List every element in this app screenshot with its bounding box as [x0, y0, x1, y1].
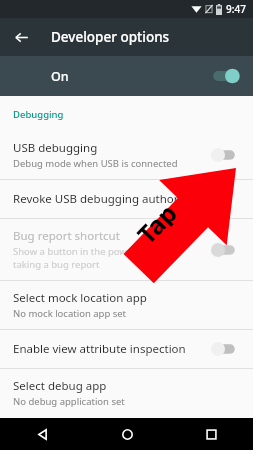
button[interactable]: Back: [0, 418, 85, 450]
staticText: Select debug app: [13, 378, 107, 394]
staticText: Tap: [129, 196, 181, 248]
staticText: On: [51, 68, 209, 85]
button[interactable]: USB debugging: [0, 131, 253, 179]
button[interactable]: Select debug app: [0, 369, 253, 417]
button[interactable]: On: [0, 56, 253, 96]
staticText: Bug report shortcut: [13, 228, 120, 244]
button[interactable]: Bug report shortcut: [0, 219, 253, 280]
staticText: Select mock location app: [13, 290, 147, 306]
staticText: USB debugging: [13, 140, 98, 156]
staticText: 9:47: [226, 2, 246, 16]
staticText: Show a button in the power menu for taki…: [13, 245, 180, 271]
button[interactable]: Recent apps: [169, 418, 253, 450]
button[interactable]: Enable view attribute inspection: [0, 330, 253, 368]
button[interactable]: Home: [85, 418, 169, 450]
staticText: Developer options: [51, 28, 170, 46]
staticText: Enable view attribute inspection: [13, 341, 186, 357]
button[interactable]: Revoke USB debugging authorizations: [0, 180, 253, 218]
staticText: Debug mode when USB is connected: [13, 157, 178, 170]
staticText: No debug application set: [13, 395, 125, 408]
button[interactable]: Back: [8, 24, 34, 50]
staticText: Revoke USB debugging authorizations: [13, 191, 221, 207]
staticText: Debugging: [13, 108, 64, 121]
staticText: No mock location app set: [13, 307, 127, 320]
button[interactable]: Select mock location app: [0, 281, 253, 329]
